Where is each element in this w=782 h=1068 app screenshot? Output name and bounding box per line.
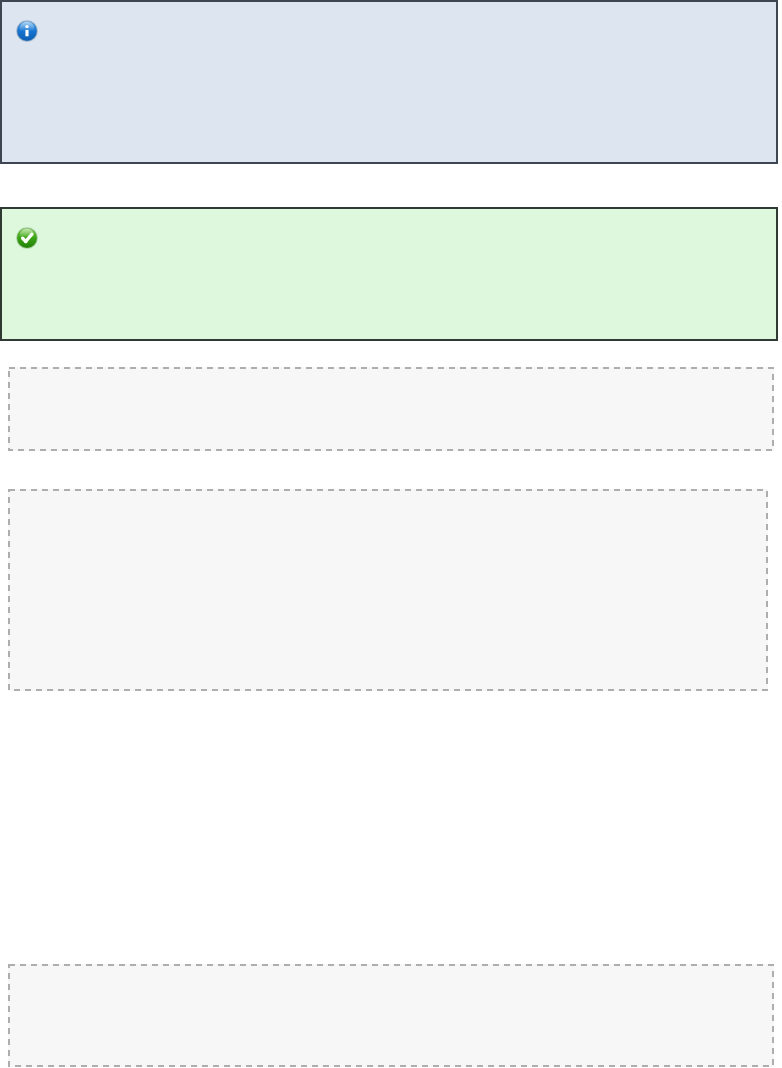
button[interactable] <box>8 964 774 1067</box>
button[interactable] <box>8 489 768 691</box>
other: Information <box>16 20 38 42</box>
other: Success <box>16 227 38 249</box>
button[interactable]: Success <box>0 207 778 341</box>
button[interactable] <box>8 367 774 451</box>
button[interactable]: Information <box>0 0 778 164</box>
